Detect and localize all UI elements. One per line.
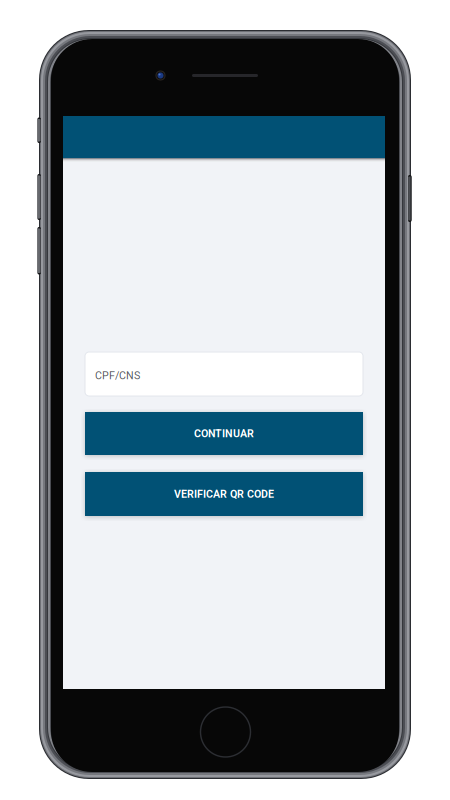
staticText: CPF/CNS bbox=[95, 369, 140, 382]
button[interactable]: CONTINUAR bbox=[85, 412, 363, 455]
staticText: VERIFICAR QR CODE bbox=[174, 488, 274, 500]
button[interactable]: CPF/CNS bbox=[85, 352, 363, 396]
staticText: CONTINUAR bbox=[194, 427, 254, 440]
button[interactable]: VERIFICAR QR CODE bbox=[85, 472, 363, 516]
